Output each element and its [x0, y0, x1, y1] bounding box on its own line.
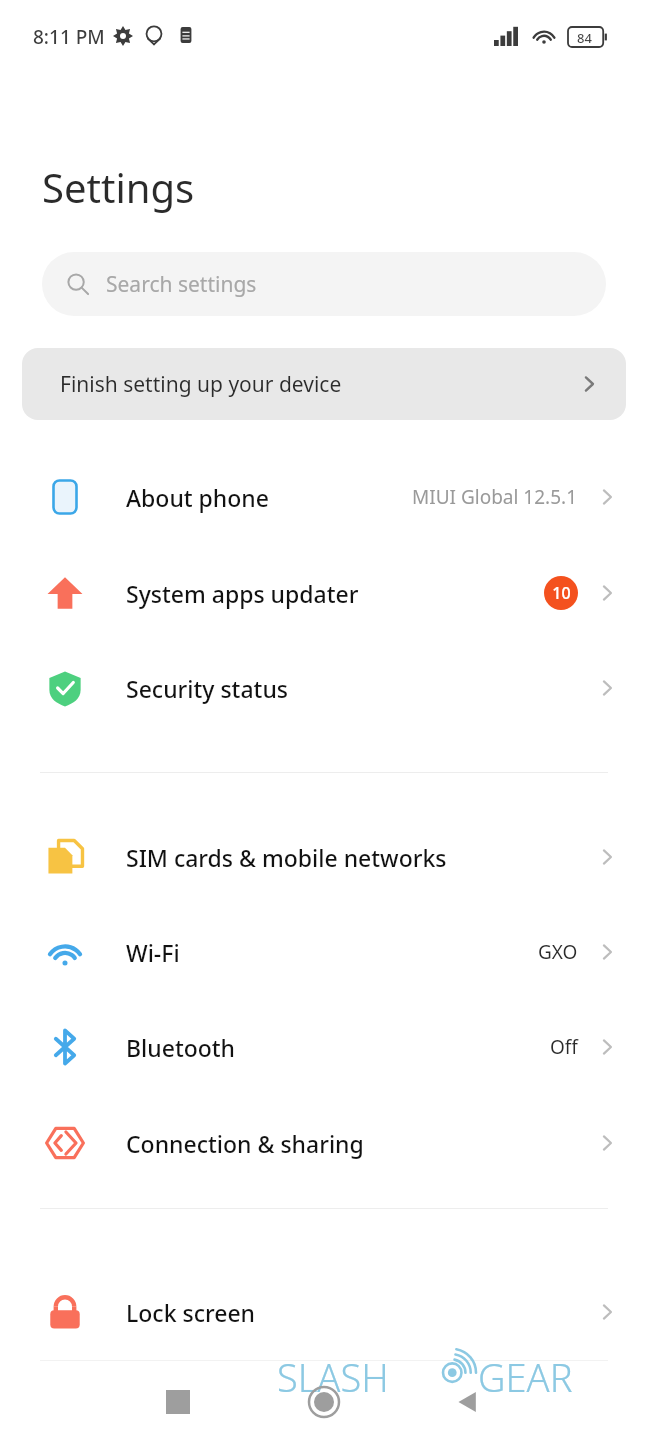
- staticText: Security status: [126, 673, 596, 704]
- button[interactable]: Search settings: [42, 252, 606, 316]
- staticText: SLASH: [277, 1351, 389, 1403]
- button[interactable]: About phone: [0, 449, 648, 545]
- button[interactable]: SIM cards & mobile networks: [0, 809, 648, 905]
- staticText: Connection & sharing: [126, 1128, 596, 1159]
- staticText: Finish setting up your device: [60, 370, 578, 399]
- staticText: Search settings: [106, 270, 257, 299]
- staticText: Settings: [42, 160, 195, 214]
- button[interactable]: Security status: [0, 640, 648, 736]
- button[interactable]: Home: [298, 1376, 350, 1428]
- staticText: 8:11 PM: [33, 24, 105, 50]
- button[interactable]: Back: [442, 1376, 494, 1428]
- staticText: Wi-Fi: [126, 937, 538, 968]
- staticText: System apps updater: [126, 578, 544, 609]
- staticText: Bluetooth: [126, 1032, 550, 1063]
- button[interactable]: Wi-Fi: [0, 904, 648, 1000]
- staticText: SIM cards & mobile networks: [126, 842, 596, 873]
- staticText: About phone: [126, 482, 412, 513]
- staticText: 84: [577, 29, 592, 47]
- button[interactable]: Recents: [152, 1376, 204, 1428]
- button[interactable]: System apps updater: [0, 545, 648, 641]
- staticText: 10: [552, 582, 571, 604]
- button[interactable]: Finish setting up your device: [22, 348, 626, 420]
- staticText: Lock screen: [126, 1297, 596, 1328]
- button[interactable]: Bluetooth: [0, 999, 648, 1095]
- staticText: GEAR: [478, 1351, 573, 1403]
- button[interactable]: Connection & sharing: [0, 1095, 648, 1191]
- staticText: MIUI Global 12.5.1: [412, 484, 578, 510]
- button[interactable]: Lock screen: [0, 1264, 648, 1360]
- staticText: Off: [550, 1034, 578, 1060]
- staticText: GXO: [538, 939, 578, 965]
